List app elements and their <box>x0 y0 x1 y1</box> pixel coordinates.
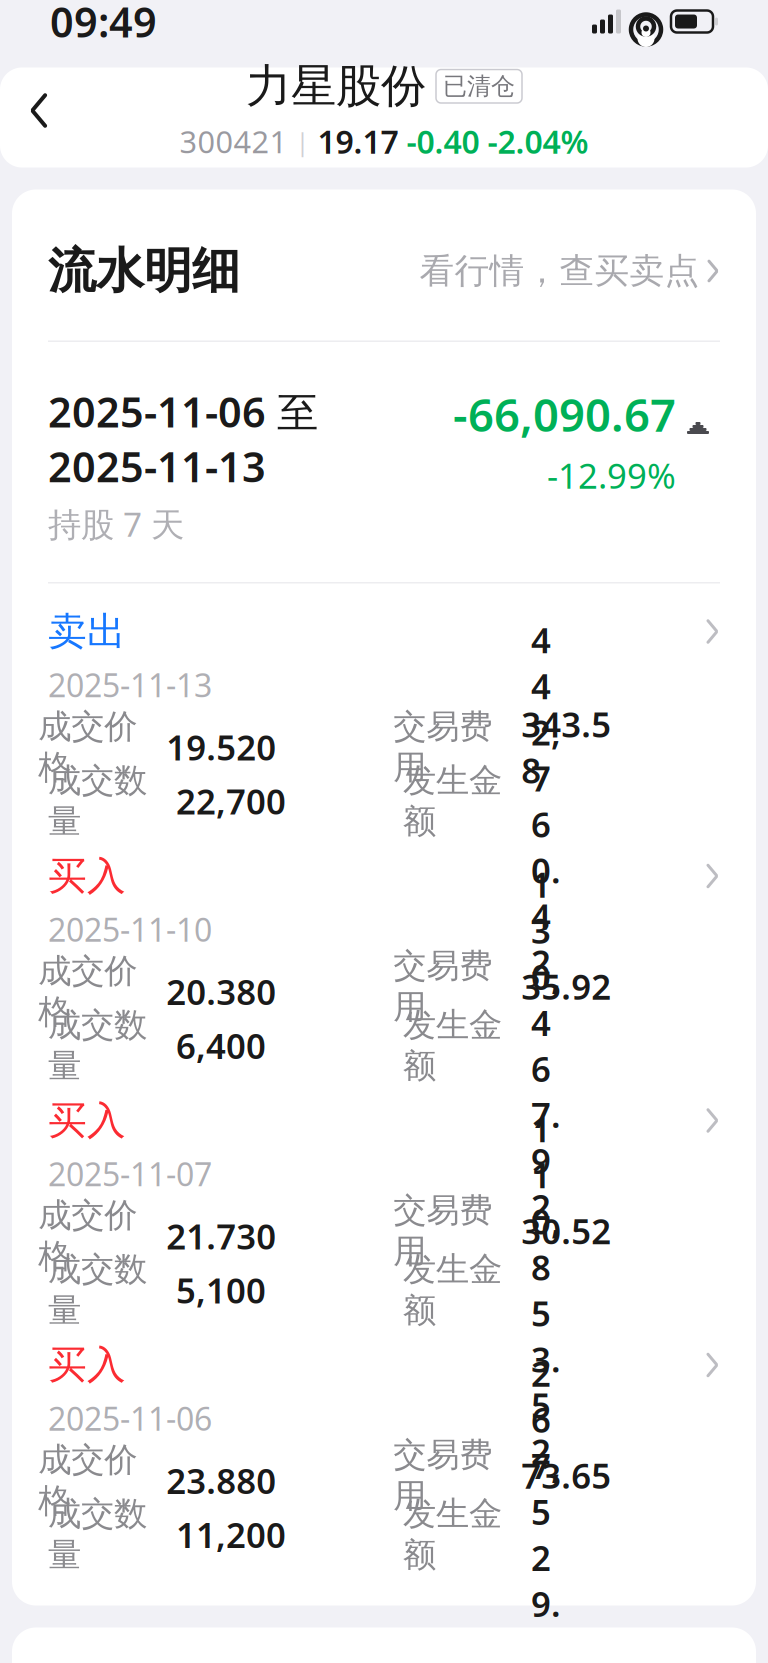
staticText: 22,700 <box>176 778 286 824</box>
staticText: 交易费用 <box>393 945 492 1027</box>
button[interactable]: 买入 <box>12 828 756 1072</box>
staticText: 2025-11-13 <box>48 663 212 706</box>
staticText: 20.380 <box>166 968 276 1014</box>
staticText: 11,200 <box>176 1511 286 1557</box>
staticText: 73.65 <box>521 1452 611 1498</box>
button[interactable]: 卖出 <box>12 583 756 828</box>
staticText: 流水明细 <box>48 241 240 300</box>
staticText: 成交价格 <box>38 706 137 788</box>
staticText: 19.17 <box>317 120 398 163</box>
staticText: 5,100 <box>176 1267 266 1313</box>
button[interactable]: 买入 <box>12 1072 756 1317</box>
staticText: 卖出 <box>48 608 126 655</box>
staticText: 23.880 <box>166 1457 276 1503</box>
staticText: 成交数量 <box>48 1249 147 1331</box>
staticText: 成交数量 <box>48 1493 147 1575</box>
staticText: 300421 <box>179 121 287 162</box>
staticText: 成交价格 <box>38 1195 137 1277</box>
button[interactable]: 2025-11-06 至 2025-11-13 <box>12 342 756 582</box>
staticText: -66,090.67 <box>453 384 676 444</box>
staticText: 买入 <box>48 852 126 900</box>
staticText: 交易费用 <box>393 1434 492 1516</box>
staticText: 发生金额 <box>403 1005 502 1086</box>
staticText: 看行情，查买卖点 <box>420 250 700 292</box>
staticText: -0.40 <box>406 120 479 163</box>
button[interactable]: 看行情，查买卖点 <box>420 250 720 292</box>
staticText: 267,529.65 <box>531 1350 561 1663</box>
staticText: 发生金额 <box>403 1249 502 1331</box>
staticText: 成交数量 <box>48 1005 147 1086</box>
staticText: 2025-11-07 <box>48 1152 212 1195</box>
staticText: 442,760.42 <box>531 617 561 985</box>
staticText: 成交数量 <box>48 760 147 842</box>
staticText: 交易费用 <box>393 1190 492 1272</box>
staticText: 343.58 <box>521 701 611 793</box>
staticText: -2.04% <box>487 120 588 163</box>
staticText: 成交价格 <box>38 1439 137 1521</box>
staticText: | <box>295 124 309 158</box>
staticText: 买入 <box>48 1097 126 1144</box>
staticText: 2025-11-06 <box>48 1397 212 1439</box>
staticText: 19.520 <box>166 724 276 770</box>
staticText: 买入 <box>48 1341 126 1389</box>
staticText: 130,467.92 <box>531 861 561 1230</box>
staticText: 2025-11-10 <box>48 908 212 950</box>
staticText: 35.92 <box>521 963 611 1009</box>
staticText: 力星股份 <box>246 58 426 114</box>
staticText: 交易费用 <box>393 706 492 788</box>
staticText: 21.730 <box>166 1213 276 1259</box>
staticText: 2025-11-06 至 2025-11-13 <box>48 384 318 494</box>
staticText: 已清仓 <box>443 71 515 101</box>
button[interactable]: 买入 <box>12 1317 756 1561</box>
staticText: 6,400 <box>176 1022 266 1068</box>
staticText: 09:49 <box>50 0 157 49</box>
staticText: 30.52 <box>521 1208 611 1254</box>
staticText: -12.99% <box>547 452 676 498</box>
staticText: 发生金额 <box>403 1493 502 1575</box>
staticText: 持股 7 天 <box>48 502 184 546</box>
button[interactable]: 返回 <box>0 67 78 153</box>
staticText: 成交价格 <box>38 951 137 1032</box>
staticText: 发生金额 <box>403 760 502 842</box>
staticText: 110,853.52 <box>531 1106 561 1474</box>
